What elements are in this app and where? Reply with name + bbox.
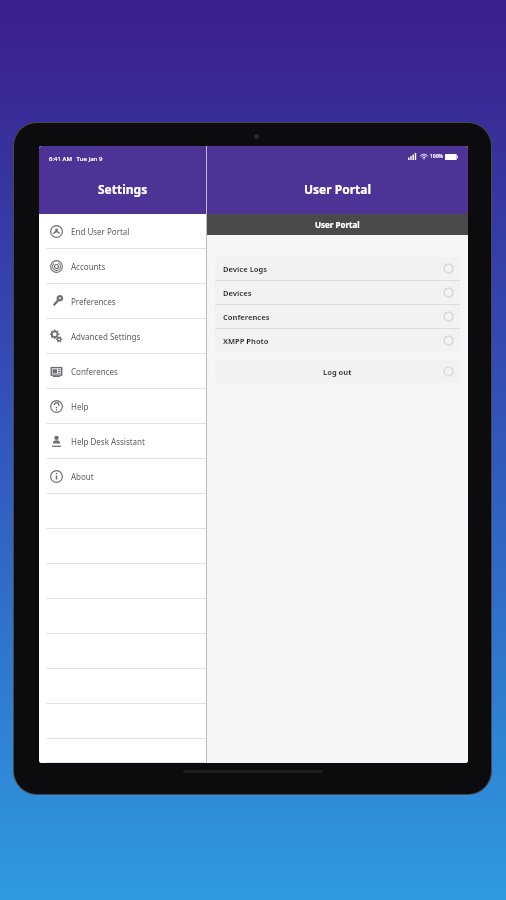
staticText: Help [71, 401, 89, 412]
button[interactable]: Conferences [215, 305, 460, 328]
staticText: Settings [98, 181, 148, 197]
other: Open Devices [444, 288, 453, 297]
other: Open Device Logs [444, 264, 453, 273]
button[interactable]: About [39, 459, 206, 494]
staticText: Help Desk Assistant [71, 436, 145, 447]
button[interactable]: Help Desk Assistant [39, 424, 206, 459]
staticText: User Portal [315, 219, 360, 230]
staticText: About [71, 471, 94, 482]
staticText: Preferences [71, 296, 116, 307]
button[interactable]: Accounts [39, 249, 206, 284]
staticText: Device Logs [223, 264, 268, 274]
other: Open Conferences [444, 312, 453, 321]
button[interactable]: Help [39, 389, 206, 424]
staticText: Advanced Settings [71, 331, 141, 342]
button[interactable]: Log out [215, 360, 460, 383]
staticText: 100% [430, 153, 443, 160]
button[interactable]: Device Logs [215, 257, 460, 280]
button[interactable]: Advanced Settings [39, 319, 206, 354]
staticText: Conferences [223, 312, 270, 322]
button[interactable]: Conferences [39, 354, 206, 389]
other: Open XMPP Photo [444, 336, 453, 345]
staticText: XMPP Photo [223, 336, 269, 346]
button[interactable]: XMPP Photo [215, 329, 460, 352]
staticText: User Portal [304, 181, 372, 197]
staticText: Devices [223, 288, 252, 298]
staticText: 6:41 AM Tue Jan 9 [49, 155, 103, 163]
staticText: End User Portal [71, 226, 130, 237]
button[interactable]: End User Portal [39, 214, 206, 249]
button[interactable]: Preferences [39, 284, 206, 319]
staticText: Log out [323, 367, 352, 377]
button[interactable]: Devices [215, 281, 460, 304]
staticText: Conferences [71, 366, 118, 377]
staticText: Accounts [71, 261, 106, 272]
